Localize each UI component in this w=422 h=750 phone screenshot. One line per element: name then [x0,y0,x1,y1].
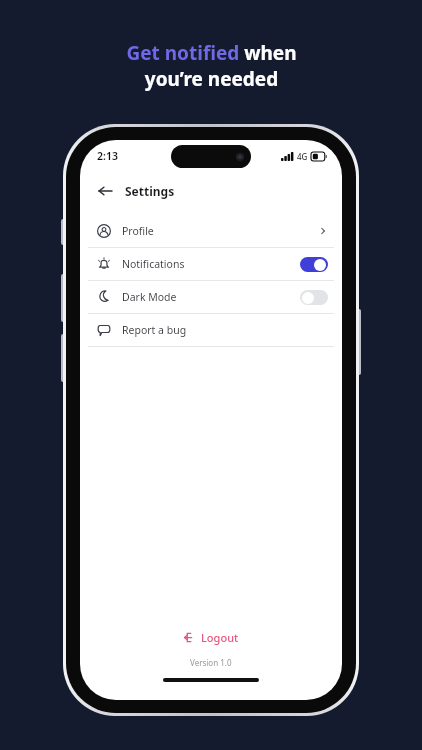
staticText: Dark Mode [122,290,177,304]
button[interactable]: Toggle on [300,257,328,272]
staticText: Get notified when you’re needed [126,40,297,92]
staticText: 2:13 [97,149,118,163]
button[interactable]: Logout [174,626,249,649]
staticText: Profile [122,224,154,238]
staticText: Settings [125,183,175,199]
button[interactable]: Report a bug [80,314,342,346]
button[interactable]: Notifications [80,248,342,280]
button[interactable]: Profile [80,215,342,247]
staticText: Logout [201,630,239,645]
button[interactable]: Dark Mode [80,281,342,313]
staticText: Notifications [122,257,185,271]
other: Logout [184,632,195,643]
staticText: 4G [297,151,308,162]
staticText: Report a bug [122,323,187,337]
button[interactable]: Toggle off [300,290,328,305]
staticText: Version 1.0 [190,657,232,668]
button[interactable]: Back [94,180,116,202]
